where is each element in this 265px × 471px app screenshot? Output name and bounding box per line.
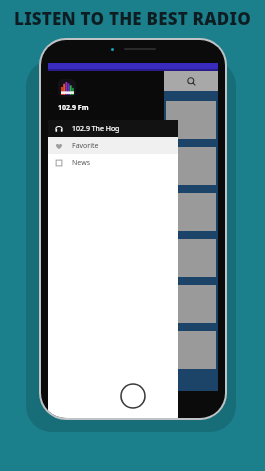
button[interactable]: 102.9 The Hog bbox=[48, 120, 178, 137]
button[interactable] bbox=[166, 285, 216, 323]
button[interactable] bbox=[166, 331, 216, 369]
button[interactable]: Station logo bbox=[58, 79, 76, 97]
staticText: LISTEN TO THE BEST RADIO bbox=[14, 7, 251, 30]
button[interactable]: News bbox=[48, 154, 178, 171]
button[interactable] bbox=[166, 239, 216, 277]
button[interactable] bbox=[166, 147, 216, 185]
button[interactable]: Favorite bbox=[48, 137, 178, 154]
button[interactable]: Search bbox=[164, 71, 218, 91]
staticText: News bbox=[72, 158, 90, 168]
staticText: 102.9 Fm bbox=[58, 103, 89, 113]
button[interactable] bbox=[166, 193, 216, 231]
button[interactable] bbox=[166, 101, 216, 139]
staticText: 102.9 The Hog bbox=[72, 124, 120, 134]
staticText: Favorite bbox=[72, 141, 99, 151]
